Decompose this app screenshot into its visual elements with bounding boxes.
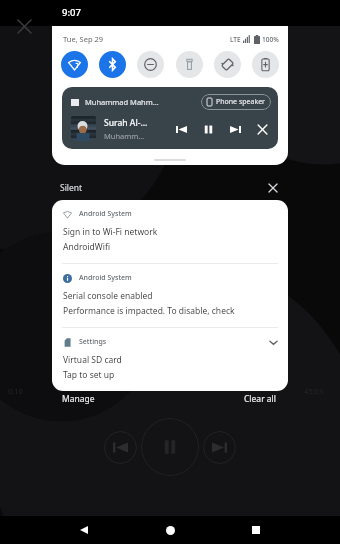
button[interactable]: Dismiss <box>253 120 271 138</box>
button[interactable]: Recents <box>242 516 270 544</box>
button[interactable]: Muhammad Mahm… <box>62 87 278 149</box>
staticText: Phone speaker <box>216 97 265 107</box>
staticText: Android System <box>79 209 132 219</box>
button[interactable]: Clear silent notifications <box>265 180 280 195</box>
staticText: Serial console enabled <box>63 290 153 302</box>
staticText: 0:10 <box>8 386 23 396</box>
staticText: Settings <box>79 337 107 347</box>
button[interactable]: Bluetooth <box>99 51 126 78</box>
staticText: Virtual SD card <box>63 354 122 366</box>
button[interactable]: Home <box>156 516 184 544</box>
staticText: 45:03 <box>304 386 324 396</box>
button[interactable]: Auto-rotate <box>214 51 241 78</box>
button[interactable]: Phone speaker <box>207 97 265 107</box>
staticText: Android System <box>79 273 132 283</box>
button[interactable]: Do Not Disturb <box>137 51 164 78</box>
button[interactable]: Pause <box>141 418 199 476</box>
button[interactable]: Settings <box>52 328 288 391</box>
button[interactable]: Manage <box>60 391 97 407</box>
staticText: Performance is impacted. To disable, che… <box>63 305 278 317</box>
button[interactable]: Close <box>9 11 39 41</box>
button[interactable]: Android System <box>52 264 288 327</box>
button[interactable]: Previous <box>104 431 137 464</box>
button[interactable]: Previous <box>172 120 190 138</box>
staticText: Tue, Sep 29 <box>63 34 104 44</box>
button[interactable]: Android System <box>52 200 288 263</box>
staticText: Tap to set up <box>63 369 115 381</box>
staticText: Silent <box>60 182 83 194</box>
button[interactable]: Flashlight <box>176 51 203 78</box>
button[interactable]: Back <box>70 516 98 544</box>
staticText: 100% <box>262 35 279 44</box>
staticText: LTE <box>230 35 241 44</box>
button[interactable]: Next <box>226 120 244 138</box>
staticText: Muhamm… <box>104 131 145 141</box>
staticText: 9:07 <box>62 6 81 19</box>
button[interactable]: Clear all <box>242 391 279 407</box>
button[interactable]: Next <box>203 431 236 464</box>
button[interactable]: Wi-Fi <box>61 51 88 78</box>
staticText: Surah Al-… <box>104 117 148 129</box>
button[interactable]: Battery Saver <box>252 51 279 78</box>
staticText: AndroidWifi <box>63 241 111 253</box>
staticText: Muhammad Mahm… <box>85 97 159 107</box>
staticText: Sign in to Wi-Fi network <box>63 226 158 238</box>
staticText: Clear all <box>244 393 277 405</box>
staticText: Manage <box>62 393 95 405</box>
button[interactable]: Pause <box>199 120 217 138</box>
